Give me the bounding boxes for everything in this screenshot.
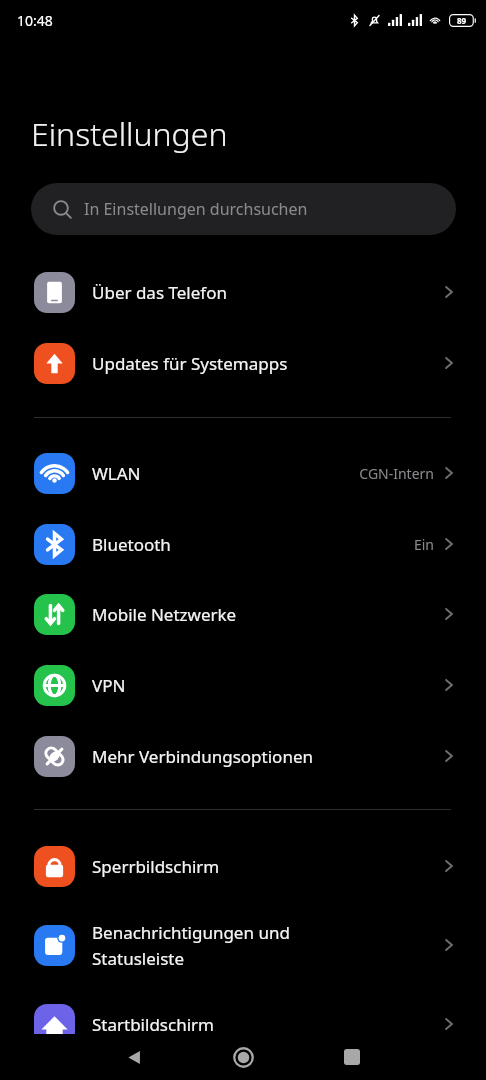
button[interactable]: Updates für Systemapps <box>0 328 486 398</box>
staticText: Bluetooth <box>92 533 332 556</box>
button[interactable]: Startbildschirm <box>0 989 486 1059</box>
staticText: Updates für Systemapps <box>92 352 332 375</box>
button[interactable]: VPN <box>0 650 486 720</box>
staticText: Mobile Netzwerke <box>92 603 332 626</box>
staticText: Einstellungen <box>31 112 228 156</box>
staticText: WLAN <box>92 462 332 485</box>
button[interactable]: Über das Telefon <box>0 257 486 327</box>
button[interactable]: Benachrichtigungen und Statusleiste <box>0 910 486 980</box>
staticText: 10:48 <box>17 11 53 30</box>
staticText: 89 <box>457 15 467 26</box>
staticText: CGN-Intern <box>359 464 434 483</box>
button[interactable]: In Einstellungen durchsuchen <box>31 183 456 235</box>
staticText: Benachrichtigungen und Statusleiste <box>92 921 332 970</box>
button[interactable]: Back <box>110 1034 158 1080</box>
staticText: In Einstellungen durchsuchen <box>84 198 308 220</box>
button[interactable]: Mehr Verbindungsoptionen <box>0 721 486 791</box>
staticText: Startbildschirm <box>92 1013 332 1036</box>
button[interactable]: Mobile Netzwerke <box>0 579 486 649</box>
button[interactable]: Bluetooth <box>0 509 486 579</box>
button[interactable]: Recent apps <box>328 1034 376 1080</box>
staticText: Mehr Verbindungsoptionen <box>92 745 332 768</box>
button[interactable]: Home <box>219 1034 267 1080</box>
button[interactable]: Sperrbildschirm <box>0 831 486 901</box>
button[interactable]: WLAN <box>0 438 486 508</box>
staticText: Ein <box>413 535 434 554</box>
staticText: VPN <box>92 674 332 697</box>
staticText: Über das Telefon <box>92 281 332 304</box>
staticText: Sperrbildschirm <box>92 855 332 878</box>
